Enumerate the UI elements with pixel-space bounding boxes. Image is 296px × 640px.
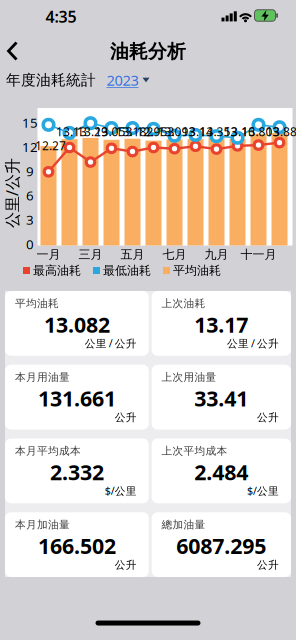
staticText: 13.182 [115, 123, 153, 139]
staticText: 平均油耗 [15, 297, 59, 310]
staticText: 166.502 [38, 532, 116, 560]
staticText: 13.17 [194, 310, 248, 339]
staticText: 九月 [204, 247, 228, 262]
staticText: 公里 / 公升 [85, 336, 137, 350]
staticText: 9 [26, 162, 34, 180]
staticText: 十一月 [240, 247, 276, 262]
staticText: 6 [26, 186, 34, 204]
staticText: 3 [26, 211, 34, 228]
staticText: 上次平均成本 [162, 444, 228, 458]
staticText: 平均油耗 [173, 263, 221, 278]
staticText: 13.13 [56, 123, 87, 139]
button[interactable]: 2023 [106, 70, 149, 90]
staticText: 12 [22, 138, 38, 156]
staticText: 2.332 [50, 458, 104, 486]
staticText: 公里/公升 [0, 182, 47, 204]
staticText: 2.484 [194, 458, 248, 486]
staticText: 13.803 [241, 123, 279, 139]
staticText: $/公里 [247, 484, 279, 498]
staticText: 油耗分析 [110, 40, 186, 63]
staticText: 13.29 [77, 123, 108, 139]
staticText: 公升 [115, 558, 137, 571]
staticText: 最低油耗 [103, 263, 151, 278]
staticText: 本月用油量 [15, 371, 70, 384]
staticText: 上次油耗 [162, 297, 206, 310]
staticText: 13.093 [157, 123, 195, 139]
staticText: 0 [26, 235, 34, 253]
staticText: 33.41 [194, 384, 248, 412]
staticText: 13.14 [182, 123, 213, 139]
staticText: 13.16 [224, 123, 255, 139]
staticText: 12.27 [35, 137, 66, 153]
staticText: 公里 / 公升 [227, 336, 279, 350]
staticText: 公升 [115, 411, 137, 424]
staticText: 本月加油量 [15, 518, 70, 531]
staticText: 12.953 [136, 123, 174, 139]
staticText: $/公里 [105, 484, 137, 498]
staticText: 2023 [106, 70, 138, 90]
staticText: 4:35 [45, 6, 76, 27]
staticText: 本月平均成本 [15, 444, 81, 458]
staticText: 年度油耗統計 [6, 71, 96, 89]
staticText: 公升 [257, 558, 279, 571]
staticText: 13.053 [94, 123, 132, 139]
staticText: 上次用油量 [162, 371, 217, 384]
staticText: 6087.295 [176, 532, 266, 560]
staticText: 13.082 [44, 310, 110, 339]
staticText: 七月 [162, 247, 186, 262]
staticText: 一月 [36, 247, 60, 262]
staticText: 最高油耗 [33, 263, 81, 278]
staticText: 總加油量 [162, 518, 206, 531]
staticText: 五月 [120, 247, 144, 262]
staticText: 三月 [78, 247, 102, 262]
staticText: 公升 [257, 411, 279, 424]
staticText: 131.661 [38, 384, 116, 412]
button[interactable] [0, 0, 296, 640]
staticText: 13.353 [199, 123, 237, 139]
staticText: 15 [22, 114, 38, 131]
staticText: 13.88 [266, 123, 296, 139]
